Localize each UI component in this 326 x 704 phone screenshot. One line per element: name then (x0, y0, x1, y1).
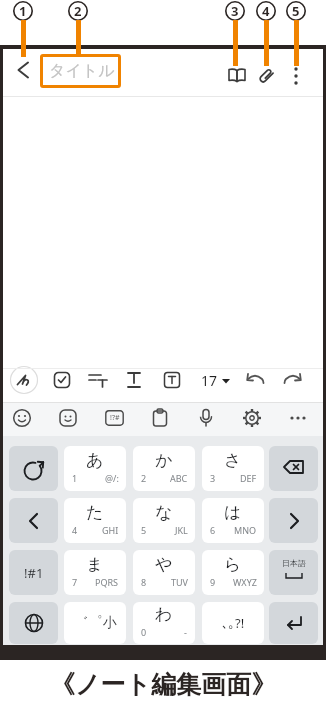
button[interactable] (9, 498, 58, 543)
button[interactable]: わ (133, 602, 195, 644)
button[interactable]: た (64, 498, 126, 543)
staticText: 7 (72, 576, 78, 588)
staticText: 1 (19, 2, 27, 20)
staticText: ABC (170, 472, 188, 484)
staticText: 17 (201, 371, 218, 390)
button[interactable]: や (133, 550, 195, 595)
button[interactable] (14, 59, 32, 81)
button[interactable] (151, 408, 169, 428)
button[interactable] (269, 498, 318, 543)
button[interactable]: 日本語 (269, 550, 318, 595)
button[interactable] (88, 371, 108, 389)
staticText: PQRS (95, 576, 119, 588)
staticText: 5 (292, 2, 300, 20)
staticText: 9 (210, 576, 216, 588)
button[interactable]: か (133, 446, 195, 491)
staticText: 3 (210, 472, 216, 484)
staticText: DEF (240, 472, 257, 484)
staticText: 1 (72, 472, 78, 484)
staticText: 4 (72, 524, 78, 536)
staticText: 2 (74, 2, 82, 20)
button[interactable]: な (133, 498, 195, 543)
staticText: !?# (110, 413, 120, 423)
staticText: 3 (231, 2, 239, 20)
button[interactable] (245, 372, 265, 388)
button[interactable] (163, 371, 181, 389)
button[interactable] (291, 66, 301, 86)
staticText: 0 (141, 626, 147, 638)
button[interactable] (226, 67, 248, 85)
button[interactable] (269, 602, 318, 644)
staticText: さ (224, 450, 242, 471)
staticText: ら (224, 554, 242, 575)
button[interactable] (198, 408, 214, 428)
button[interactable] (126, 371, 142, 389)
button[interactable] (53, 371, 71, 389)
button[interactable] (242, 408, 262, 428)
staticText: 2 (141, 472, 147, 484)
button[interactable]: タイトル (44, 56, 120, 86)
staticText: タイトル (49, 61, 115, 81)
staticText: MNO (234, 524, 257, 536)
staticText: ､｡?! (222, 614, 245, 632)
staticText: あ (86, 450, 104, 471)
button[interactable] (254, 64, 278, 88)
staticText: !#1 (24, 564, 44, 582)
button[interactable]: ゛゜小 (64, 602, 126, 644)
staticText: 《ノート編集画面》 (50, 669, 277, 700)
button[interactable] (58, 408, 78, 428)
staticText: た (86, 502, 104, 523)
staticText: 8 (141, 576, 147, 588)
button[interactable]: は (202, 498, 264, 543)
staticText: や (155, 554, 173, 575)
staticText: TUV (171, 576, 188, 588)
staticText: JKL (175, 524, 188, 536)
button[interactable] (283, 372, 303, 388)
staticText: @/: (105, 472, 119, 484)
button[interactable]: ま (64, 550, 126, 595)
button[interactable] (288, 414, 308, 422)
button[interactable] (221, 377, 231, 385)
staticText: か (155, 450, 173, 471)
staticText: 4 (262, 2, 270, 20)
staticText: - (184, 626, 187, 638)
button[interactable] (9, 602, 58, 644)
staticText: な (155, 502, 173, 523)
button[interactable] (9, 365, 39, 395)
button[interactable]: !?# (105, 410, 124, 426)
button[interactable]: ､｡?! (202, 602, 264, 644)
button[interactable] (12, 408, 32, 428)
button[interactable]: !#1 (9, 550, 58, 595)
staticText: WXYZ (233, 576, 257, 588)
staticText: GHI (102, 524, 119, 536)
staticText: 6 (210, 524, 216, 536)
button[interactable] (9, 446, 58, 491)
staticText: わ (155, 604, 173, 625)
staticText: ま (86, 554, 104, 575)
staticText: は (224, 502, 242, 523)
staticText: 日本語 (282, 558, 306, 568)
button[interactable]: あ (64, 446, 126, 491)
button[interactable]: ら (202, 550, 264, 595)
staticText: 5 (141, 524, 147, 536)
button[interactable] (269, 446, 318, 491)
staticText: ゛゜小 (74, 614, 117, 632)
button[interactable]: さ (202, 446, 264, 491)
